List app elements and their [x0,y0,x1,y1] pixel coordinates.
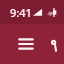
button[interactable]: Search [50,24,58,64]
staticText: 9:41 [10,5,32,20]
button[interactable]: Open navigation menu [6,24,46,64]
